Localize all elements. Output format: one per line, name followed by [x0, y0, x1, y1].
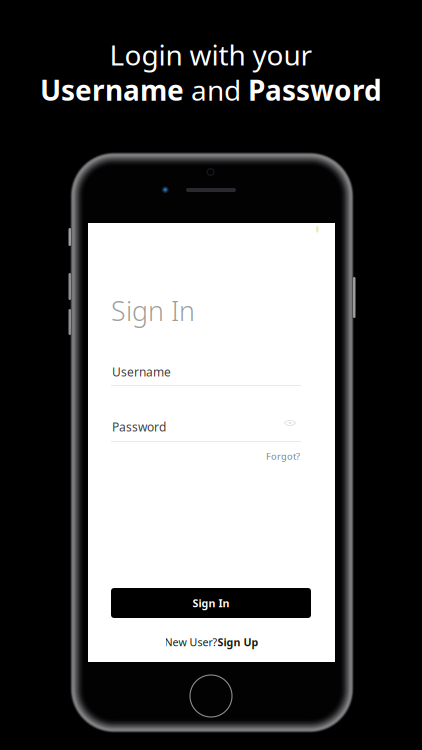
button[interactable]: Sign In [111, 588, 311, 618]
button[interactable]: New User?Sign Up [88, 635, 335, 649]
button[interactable]: Forgot? [266, 450, 300, 462]
staticText: Username and Password [40, 71, 382, 108]
staticText: Password [112, 419, 166, 435]
staticText: Login with your [109, 36, 312, 73]
staticText: Forgot? [266, 450, 300, 462]
staticText: Username [112, 364, 171, 380]
staticText: Sign In [192, 596, 229, 610]
staticText: New User?Sign Up [164, 635, 258, 649]
staticText: Sign In [111, 293, 195, 328]
